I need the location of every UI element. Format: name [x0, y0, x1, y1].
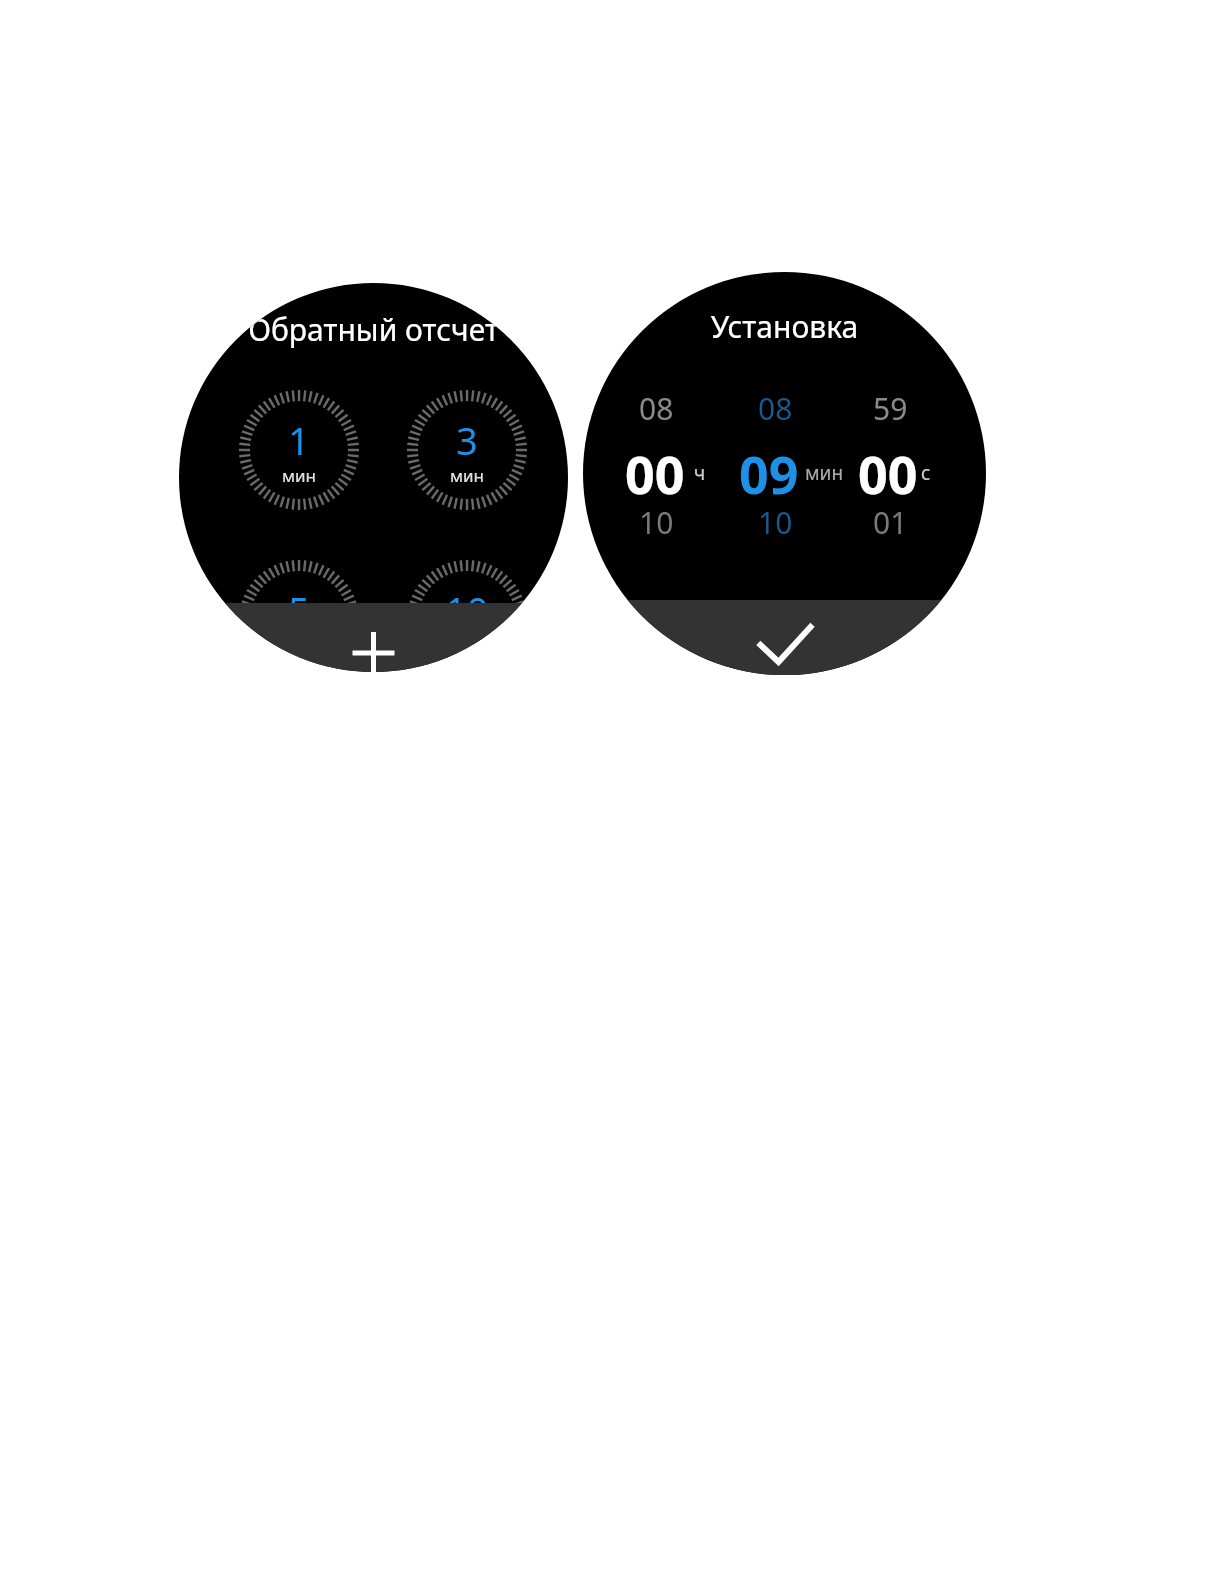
staticText: 10	[758, 502, 793, 543]
staticText: 00	[858, 438, 918, 509]
staticText: мин	[282, 634, 317, 657]
staticText: 09	[739, 438, 799, 509]
staticText: 08	[758, 388, 793, 429]
staticText: 59	[873, 388, 908, 429]
staticText: Обратный отсчет	[179, 309, 568, 672]
staticText: мин	[450, 634, 485, 657]
button[interactable]: 5	[237, 558, 361, 672]
button[interactable]: Подтвердить	[583, 600, 986, 675]
staticText: ч	[694, 460, 706, 486]
staticText: мин	[282, 464, 317, 487]
staticText: мин	[805, 460, 844, 486]
button[interactable]: 10	[405, 558, 529, 672]
staticText: мин	[450, 464, 485, 487]
staticText: 5	[288, 584, 310, 636]
staticText: Установка	[583, 306, 986, 675]
staticText: 01	[873, 502, 908, 543]
staticText: 08	[639, 388, 674, 429]
staticText: 00	[625, 438, 685, 509]
staticText: 10	[445, 584, 489, 636]
staticText: 1	[288, 414, 310, 466]
staticText: с	[921, 460, 931, 486]
staticText: 3	[456, 414, 478, 466]
button[interactable]: 1	[237, 388, 361, 512]
button[interactable]: Добавить	[179, 603, 568, 672]
button[interactable]: 3	[405, 388, 529, 512]
staticText: 10	[639, 502, 674, 543]
